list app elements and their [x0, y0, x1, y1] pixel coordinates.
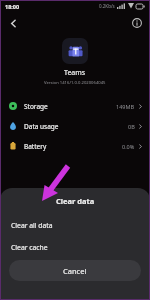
button[interactable]: Clear all data — [0, 214, 150, 236]
button[interactable]: App info — [129, 15, 145, 31]
button[interactable]: Storage — [0, 96, 150, 116]
staticText: Clear all data — [11, 221, 53, 230]
staticText: Cancel — [63, 266, 87, 276]
staticText: Clear cache — [11, 243, 48, 252]
staticText: Clear data — [56, 196, 95, 206]
button[interactable]: Clear cache — [0, 236, 150, 258]
button[interactable]: Data usage — [0, 116, 150, 136]
staticText: 0.0% — [122, 143, 135, 150]
button[interactable]: Cancel — [9, 260, 141, 281]
button[interactable]: Battery — [0, 136, 150, 156]
staticText: Battery — [24, 142, 47, 151]
staticText: 149MB — [116, 103, 135, 110]
staticText: Data usage — [24, 122, 59, 131]
staticText: 0.2Kb/s — [99, 3, 115, 9]
staticText: Version 1416/1.0.0.2020064045 — [44, 80, 106, 86]
staticText: Storage — [24, 102, 48, 111]
staticText: 0B — [128, 123, 135, 130]
staticText: 18:00 — [5, 3, 20, 10]
staticText: Teams — [64, 68, 86, 78]
button[interactable]: Back — [5, 15, 21, 31]
